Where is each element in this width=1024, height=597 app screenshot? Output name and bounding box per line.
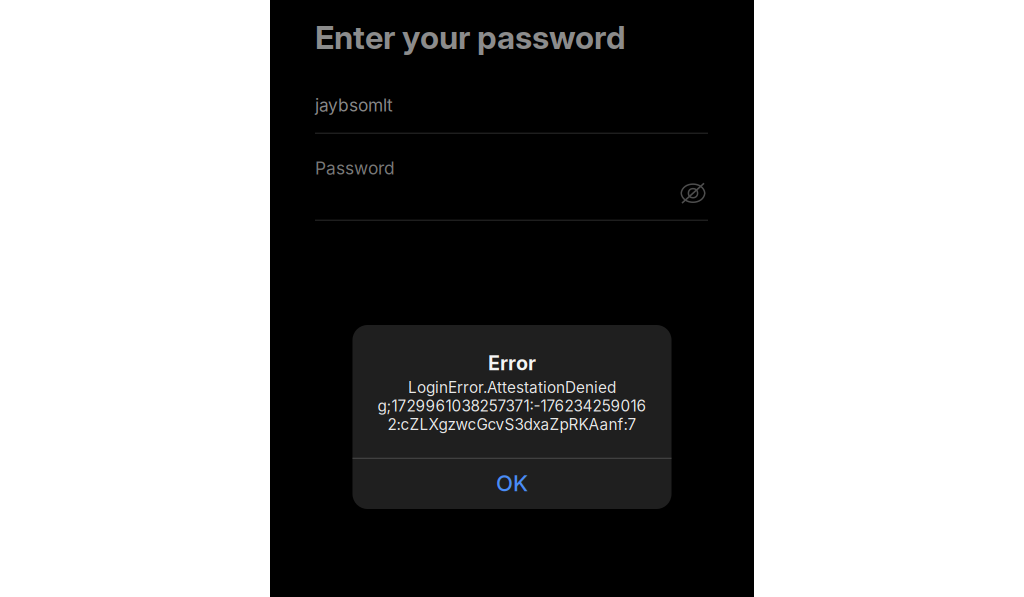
staticText: Enter your password [315,18,626,57]
staticText: g;1729961038257371:-176234259016 [377,397,646,415]
staticText: 2:cZLXgzwcGcvS3dxaZpRKAanf:7 [387,415,636,434]
staticText: LoginError.AttestationDenied [408,378,616,397]
staticText: jaybsomlt [315,95,393,116]
button[interactable]: Password [315,158,708,220]
button[interactable]: OK [352,459,671,508]
staticText: OK [496,470,528,497]
staticText: Error [488,351,536,375]
staticText: Password [315,158,395,179]
button[interactable]: jaybsomlt [315,95,708,134]
button[interactable]: Show password [678,158,708,208]
